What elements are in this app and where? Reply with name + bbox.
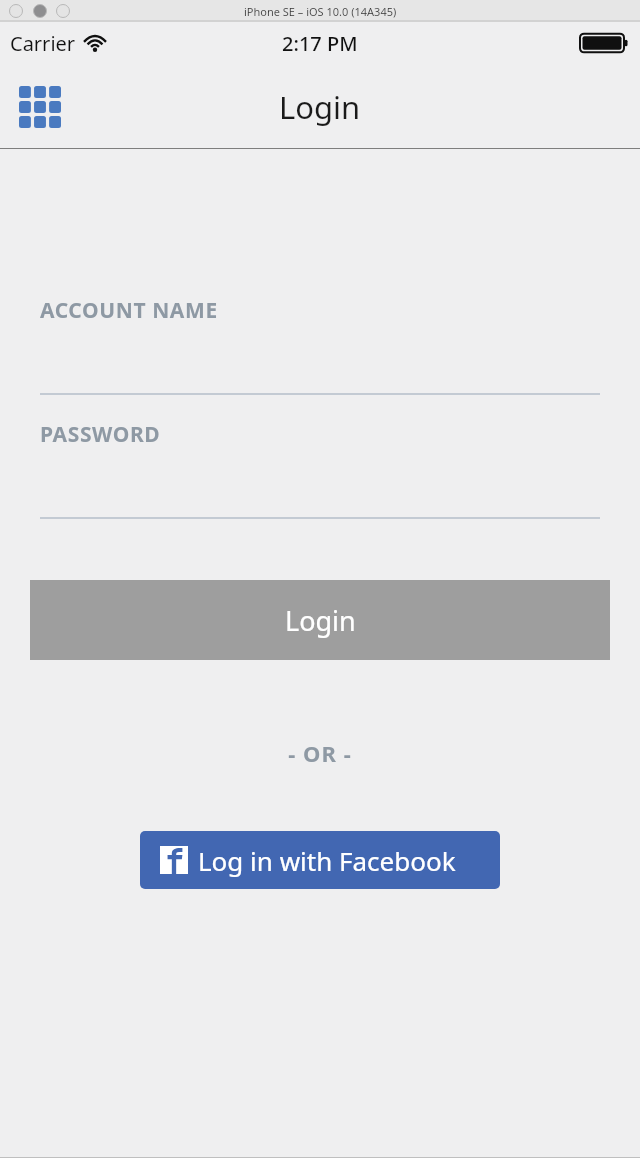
staticText: - OR - (0, 738, 640, 768)
staticText: Login (285, 602, 356, 639)
button[interactable]: Login (30, 580, 610, 660)
staticText: 2:17 PM (282, 30, 358, 57)
button[interactable]: Menu (14, 81, 66, 133)
button[interactable]: Log in with Facebook (140, 831, 500, 889)
staticText: Log in with Facebook (198, 843, 456, 878)
staticText: Carrier (10, 30, 76, 57)
staticText: PASSWORD (40, 420, 161, 449)
staticText: ACCOUNT NAME (40, 296, 218, 325)
staticText: iPhone SE – iOS 10.0 (14A345) (244, 4, 397, 19)
staticText: Login (279, 86, 361, 128)
